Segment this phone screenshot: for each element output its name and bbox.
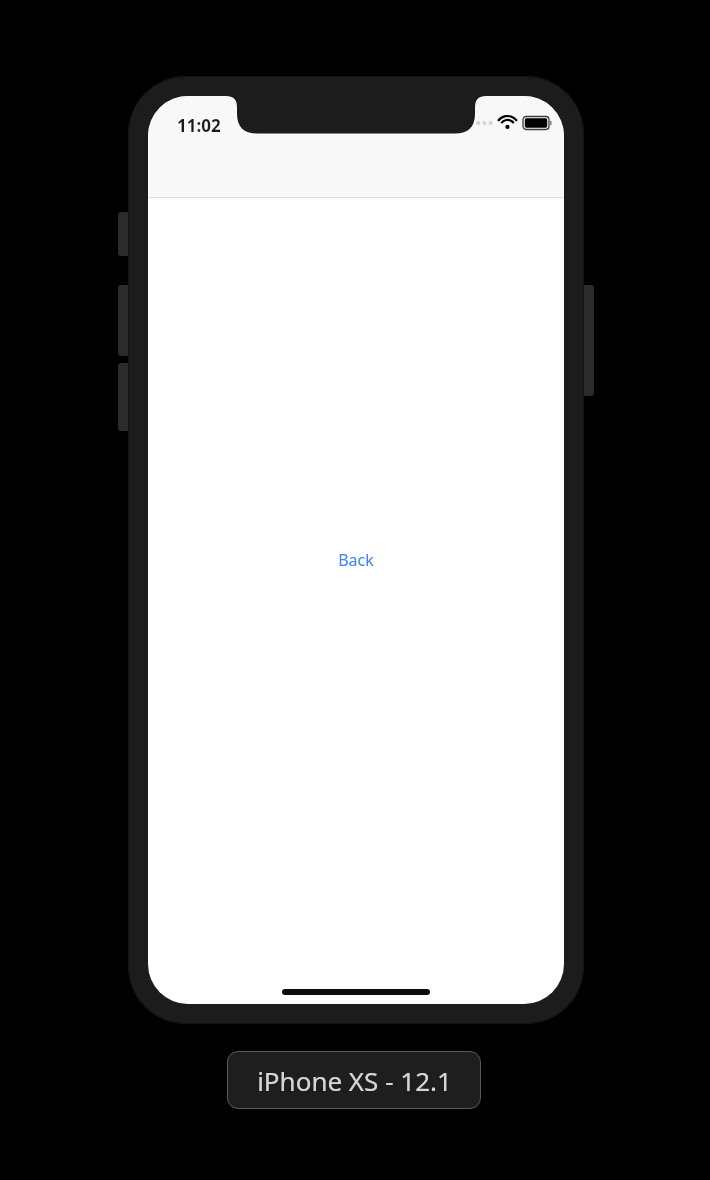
staticText: Back <box>338 549 374 571</box>
button[interactable]: iPhone XS - 12.1 <box>227 1051 481 1109</box>
staticText: iPhone XS - 12.1 <box>257 1063 452 1098</box>
other: Home indicator <box>282 989 430 995</box>
button[interactable]: Back <box>148 545 564 575</box>
staticText: 11:02 <box>177 114 221 137</box>
